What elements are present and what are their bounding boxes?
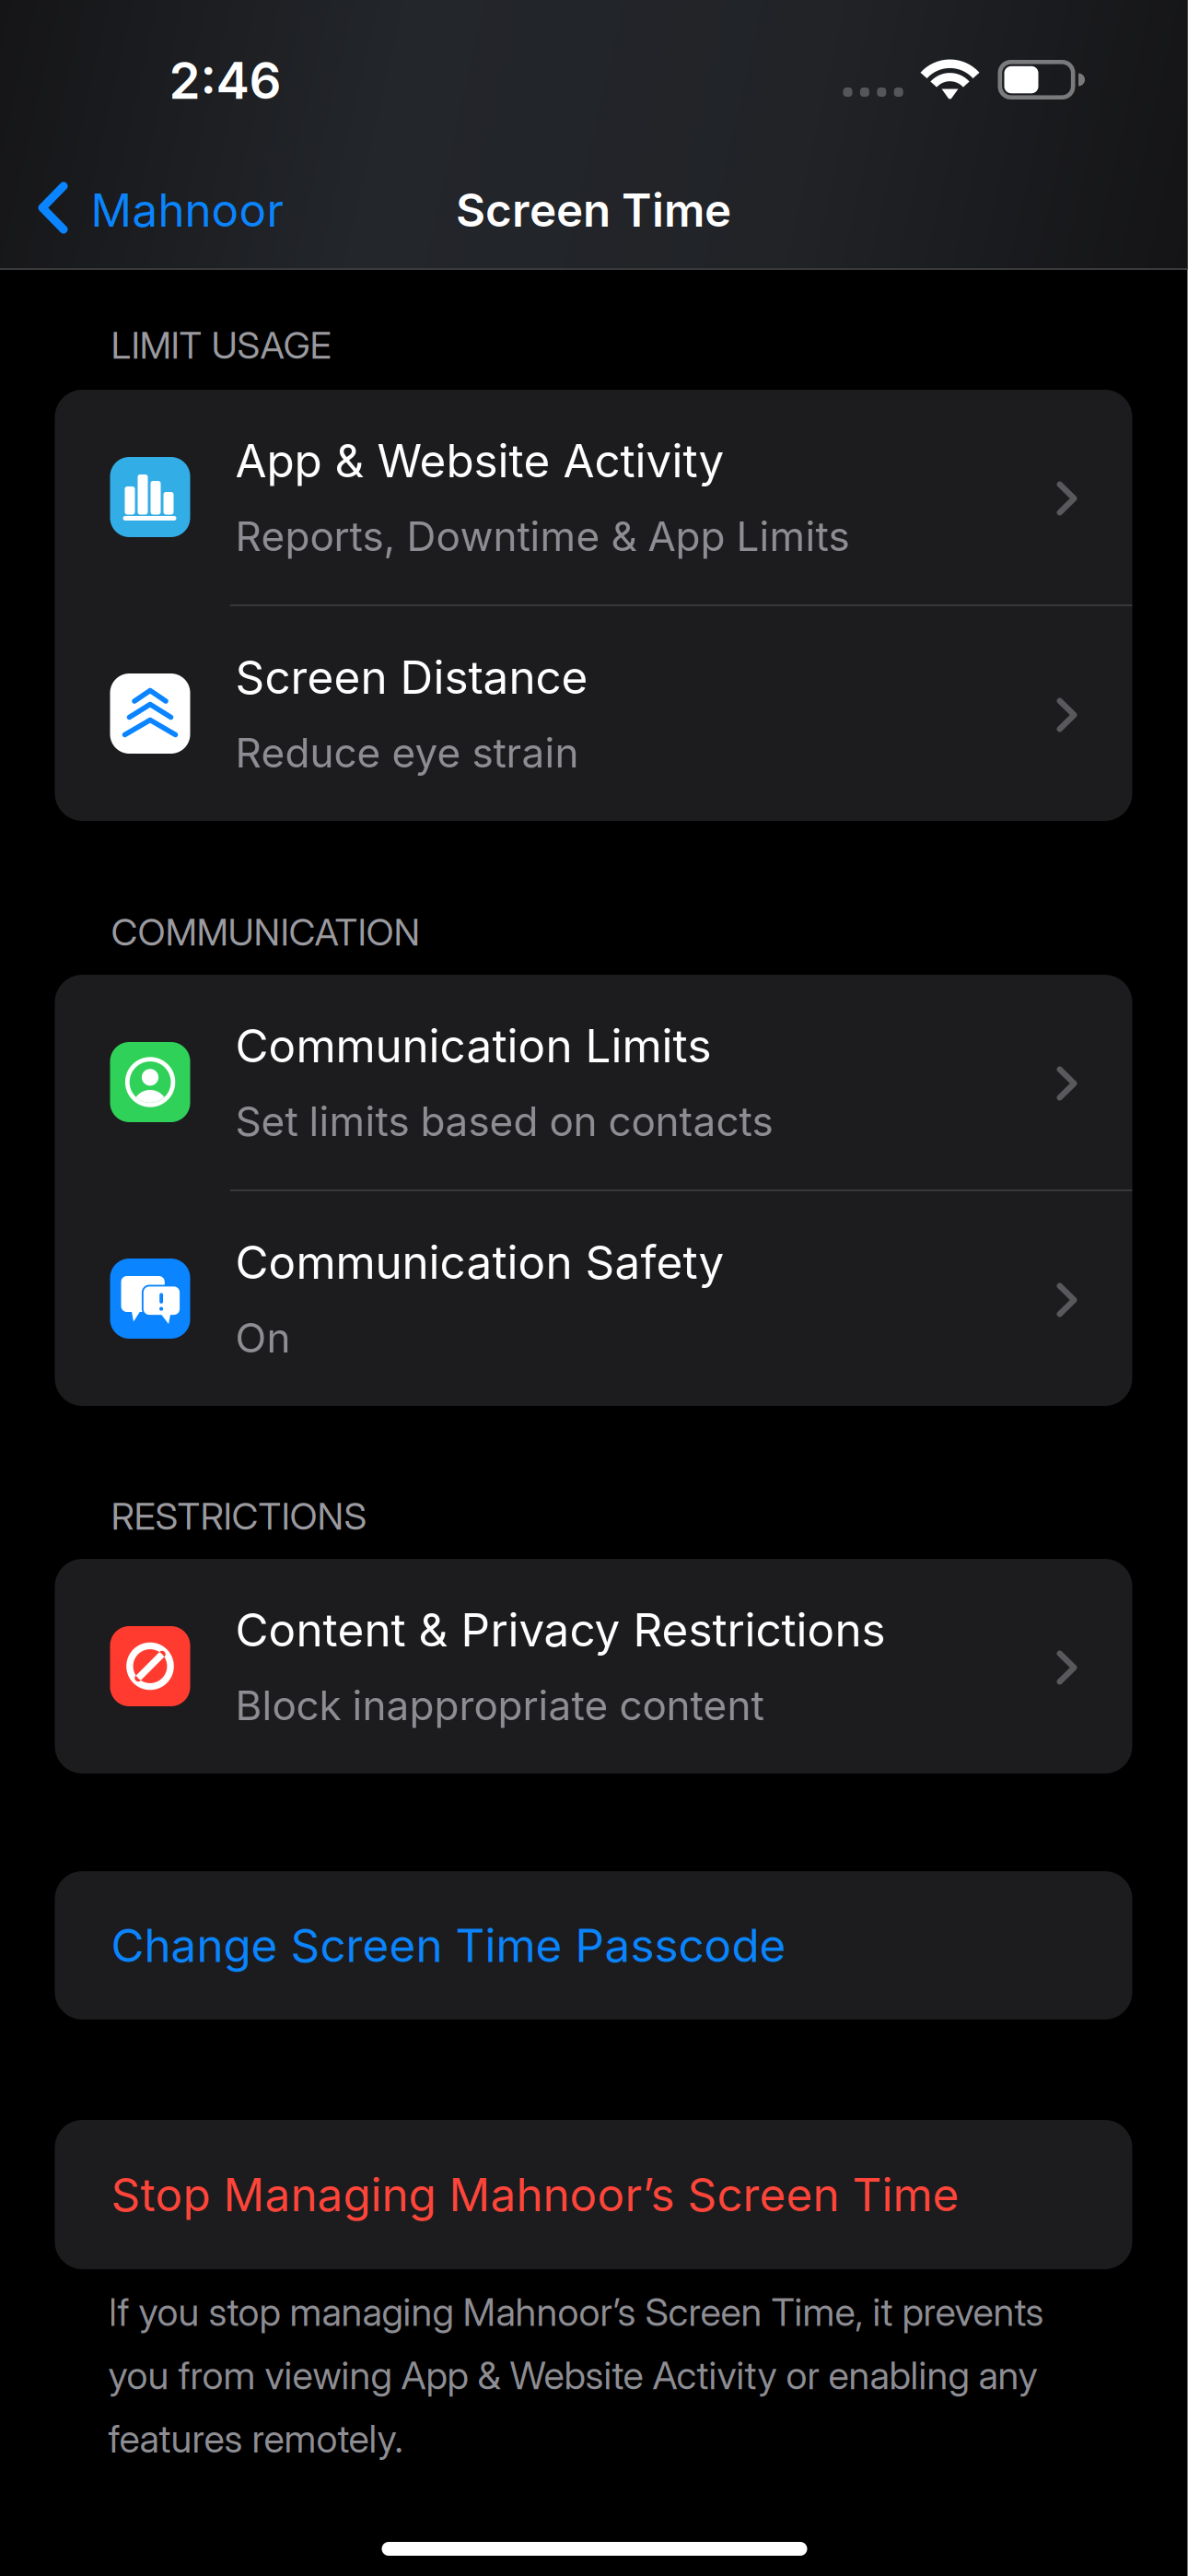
staticText: Communication Safety [235,1235,724,1289]
staticText: Communication Limits [235,1019,711,1073]
staticText: If you stop managing Mahnoor’s Screen Ti… [108,2289,1044,2461]
button[interactable]: Communication Limits [55,975,1132,1189]
staticText: LIMIT USAGE [111,323,331,367]
staticText: Content & Privacy Restrictions [235,1603,885,1657]
staticText: Screen Distance [235,650,588,704]
staticText: Change Screen Time Passcode [111,1919,786,1972]
staticText: COMMUNICATION [111,910,420,954]
button[interactable]: Mahnoor [35,169,311,252]
staticText: On [235,1314,291,1362]
staticText: Reduce eye strain [235,729,579,777]
button[interactable]: Screen Distance [55,606,1132,821]
staticText: 2:46 [169,51,281,110]
staticText: Reports, Downtime & App Limits [235,512,850,560]
staticText: Block inappropriate content [235,1681,764,1729]
staticText: Set limits based on contacts [235,1097,773,1145]
staticText: Screen Time [456,183,731,237]
staticText: App & Website Activity [235,434,724,488]
staticText: RESTRICTIONS [111,1494,367,1538]
staticText: Mahnoor [91,183,284,237]
button[interactable]: Stop Managing Mahnoor’s Screen Time [55,2120,1132,2269]
button[interactable]: App & Website Activity [55,390,1132,604]
button[interactable]: Change Screen Time Passcode [55,1871,1132,2020]
button[interactable]: Communication Safety [55,1191,1132,1406]
button[interactable]: Content & Privacy Restrictions [55,1559,1132,1774]
staticText: Stop Managing Mahnoor’s Screen Time [111,2168,959,2221]
